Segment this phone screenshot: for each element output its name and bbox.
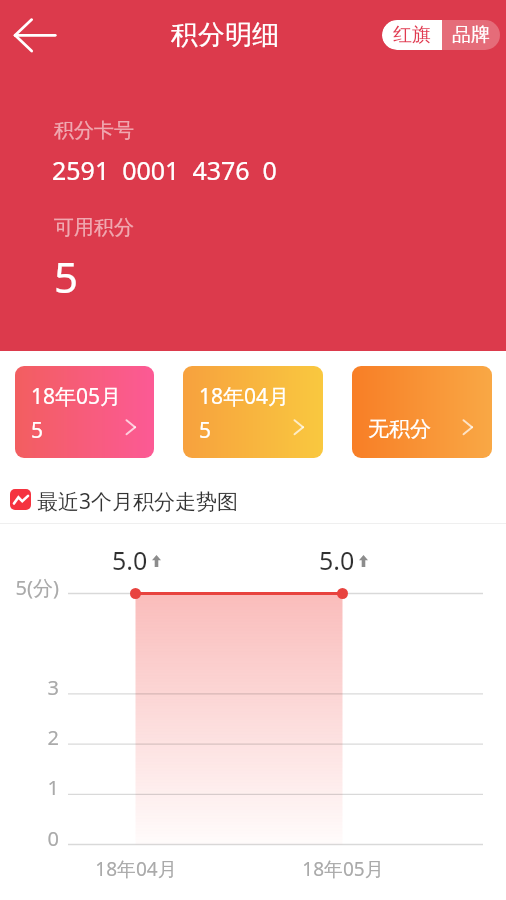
staticText: 18年05月 [273,856,413,882]
staticText: 5(分) [3,574,59,601]
staticText: 最近3个月积分走势图 [37,487,239,516]
button[interactable]: 品牌 [442,20,500,50]
staticText: 5.0 [112,543,148,577]
staticText: 18年04月 [66,856,206,882]
staticText: 积分明细 [171,18,279,52]
staticText: 品牌 [452,23,490,47]
button[interactable]: 无积分 [352,366,492,458]
staticText: 5.0 [319,543,355,577]
staticText: 0 [3,825,59,852]
staticText: 5 [199,416,212,445]
staticText: 可用积分 [54,215,134,240]
button[interactable]: Back [0,5,70,65]
button[interactable]: 18年04月 [183,366,323,458]
staticText: 积分卡号 [54,118,134,143]
button[interactable]: 红旗 [382,20,442,50]
staticText: 1 [3,774,59,801]
staticText: 红旗 [393,23,431,47]
staticText: 18年05月 [31,382,122,411]
staticText: 无积分 [368,416,431,442]
staticText: 18年04月 [199,382,290,411]
button[interactable]: 18年05月 [15,366,154,458]
staticText: 2 [3,724,59,751]
staticText: 5 [31,416,44,445]
staticText: 3 [3,674,59,701]
staticText: 5 [54,248,79,305]
staticText: 2591 0001 4376 0 [52,153,277,187]
